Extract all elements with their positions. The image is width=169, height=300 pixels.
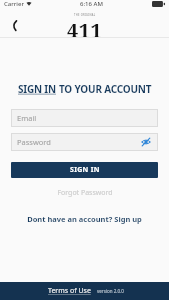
button[interactable]: SIGN IN xyxy=(11,162,158,178)
staticText: THE ORIGINAL xyxy=(74,13,96,17)
button[interactable]: Terms of Use xyxy=(46,284,93,298)
staticText: version 2.0.0 xyxy=(97,288,124,294)
button[interactable]: Forgot Password xyxy=(51,186,119,200)
staticText: 6:16 AM xyxy=(80,0,103,8)
button[interactable]: Show password xyxy=(140,136,152,148)
staticText: 411 xyxy=(67,17,103,37)
button[interactable]: Email xyxy=(11,109,158,127)
staticText: SIGN IN xyxy=(70,165,100,175)
staticText: Dont have an account? Sign up xyxy=(27,214,142,224)
staticText: Email xyxy=(17,113,37,123)
staticText: Terms of Use xyxy=(48,286,91,296)
staticText: Forgot Password xyxy=(57,188,113,198)
button[interactable]: Dont have an account? Sign up xyxy=(21,212,148,226)
staticText: TO YOUR ACCOUNT xyxy=(59,82,152,96)
button[interactable]: Back xyxy=(3,14,25,36)
staticText: Carrier xyxy=(4,0,24,8)
staticText: Password xyxy=(17,137,51,147)
staticText: SIGN IN xyxy=(18,82,56,96)
button[interactable]: Password xyxy=(11,133,158,151)
